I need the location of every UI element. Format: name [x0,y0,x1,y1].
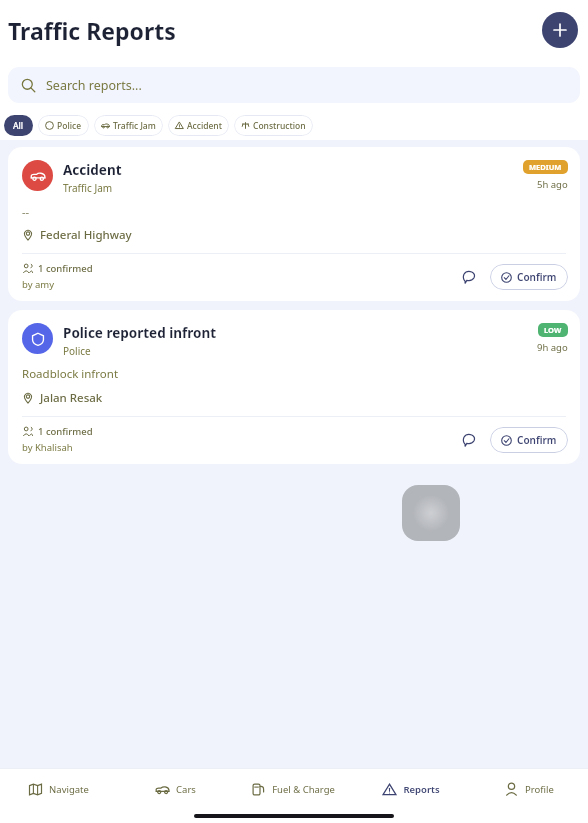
button[interactable]: Reports [352,769,470,809]
staticText: Police reported infront [63,324,217,342]
button[interactable]: Traffic Jam [94,115,163,136]
button[interactable]: Add report [542,12,578,48]
staticText: Traffic Jam [63,181,113,195]
staticText: 9h ago [537,341,568,354]
button[interactable]: Accident [168,115,229,136]
button[interactable]: Confirm [490,264,568,290]
button[interactable]: Police reported infront [8,310,580,464]
staticText: Confirm [517,433,557,447]
staticText: MEDIUM [529,162,562,172]
button[interactable]: Confirm [490,427,568,453]
staticText: Accident [63,161,122,179]
staticText: -- [22,204,30,219]
staticText: Traffic Jam [113,120,156,132]
button[interactable]: Profile [470,769,588,809]
staticText: Accident [187,120,222,132]
staticText: Jalan Resak [40,390,103,406]
button[interactable]: All [4,115,33,136]
staticText: Cars [176,783,196,796]
button[interactable]: Cars [117,769,234,809]
staticText: Reports [403,783,440,796]
staticText: Traffic Reports [8,15,176,46]
button[interactable]: Police [38,115,89,136]
staticText: by Khalisah [22,441,73,454]
staticText: Search reports... [46,77,142,94]
staticText: Fuel & Charge [272,783,335,796]
button[interactable]: Navigate [0,769,117,809]
staticText: Roadblock infront [22,366,119,382]
staticText: Police [57,120,82,132]
button[interactable]: Construction [234,115,313,136]
button[interactable]: Search reports... [8,67,580,103]
staticText: All [13,120,24,132]
staticText: Construction [253,120,306,132]
button[interactable]: Accident [8,147,580,301]
button[interactable]: Floating assistant [402,485,460,541]
staticText: Navigate [49,783,89,796]
staticText: 1 confirmed [38,425,93,438]
button[interactable]: Fuel & Charge [234,769,352,809]
staticText: 1 confirmed [38,262,93,275]
staticText: Police [63,344,91,358]
staticText: by amy [22,278,55,291]
staticText: 5h ago [537,178,568,191]
staticText: Profile [525,783,554,796]
staticText: LOW [544,325,562,335]
staticText: Confirm [517,270,557,284]
button[interactable]: Comments [456,427,482,453]
staticText: Federal Highway [40,227,132,243]
button[interactable]: Comments [456,264,482,290]
